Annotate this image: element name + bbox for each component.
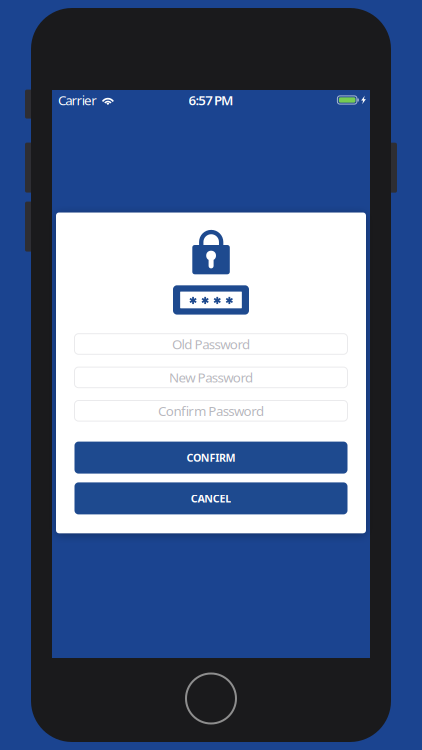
staticText: CONFIRM (186, 450, 236, 465)
staticText: 6:57 PM (188, 91, 233, 109)
button[interactable]: CANCEL (74, 482, 347, 514)
button[interactable]: CONFIRM (74, 442, 347, 474)
button[interactable]: New Password (74, 367, 347, 388)
staticText: Carrier (58, 91, 97, 109)
staticText: Confirm Password (158, 402, 264, 420)
staticText: CANCEL (191, 491, 231, 505)
staticText: New Password (169, 368, 253, 386)
button[interactable]: Confirm Password (74, 400, 347, 421)
button[interactable]: Old Password (74, 334, 347, 354)
staticText: Old Password (172, 335, 250, 353)
